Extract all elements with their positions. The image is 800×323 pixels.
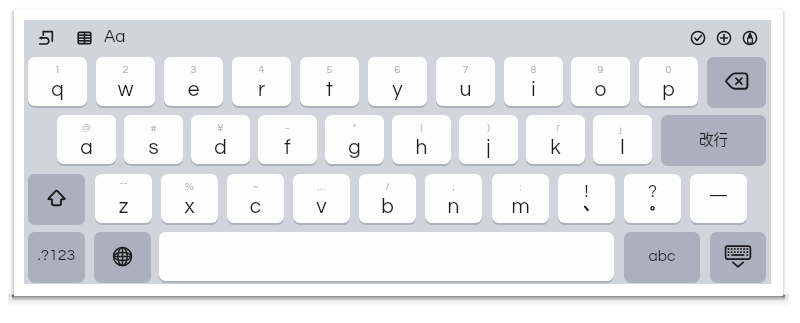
- staticText: ˆˆ: [95, 181, 152, 223]
- staticText: 1: [28, 64, 87, 106]
- button[interactable]: abc: [624, 232, 700, 281]
- staticText: Aa: [104, 28, 126, 46]
- staticText: ~: [227, 181, 284, 223]
- button[interactable]: ¥: [191, 115, 250, 164]
- button[interactable]: ): [459, 115, 518, 164]
- button[interactable]: #: [124, 115, 183, 164]
- staticText: o: [571, 79, 630, 106]
- staticText: ?: [624, 183, 681, 223]
- staticText: 0: [639, 64, 698, 106]
- button[interactable]: Aa: [104, 28, 128, 48]
- staticText: c: [227, 196, 284, 223]
- staticText: i: [504, 79, 563, 106]
- staticText: f: [258, 137, 317, 164]
- staticText: t: [300, 79, 359, 106]
- staticText: h: [392, 137, 451, 164]
- button[interactable]: ~: [227, 174, 284, 223]
- staticText: /: [359, 181, 416, 223]
- button[interactable]: 0: [639, 57, 698, 106]
- button[interactable]: *: [325, 115, 384, 164]
- button[interactable]: 2: [96, 57, 155, 106]
- button[interactable]: 3: [164, 57, 223, 106]
- staticText: abc: [624, 248, 700, 281]
- staticText: r: [232, 79, 291, 106]
- button[interactable]: 6: [368, 57, 427, 106]
- staticText: p: [639, 79, 698, 106]
- staticText: @: [57, 122, 116, 164]
- staticText: 」: [593, 123, 652, 164]
- button[interactable]: 9: [571, 57, 630, 106]
- button[interactable]: !: [558, 174, 615, 223]
- staticText: d: [191, 137, 250, 164]
- staticText: 4: [232, 64, 291, 106]
- staticText: k: [526, 137, 585, 164]
- staticText: 7: [436, 64, 495, 106]
- button[interactable]: ?: [624, 174, 681, 223]
- staticText: (: [392, 122, 451, 164]
- staticText: e: [164, 79, 223, 106]
- staticText: :: [492, 181, 549, 223]
- button[interactable]: —: [690, 174, 747, 223]
- button[interactable]: 」: [593, 115, 652, 164]
- staticText: u: [436, 79, 495, 106]
- staticText: -: [258, 122, 317, 164]
- button[interactable]: -: [258, 115, 317, 164]
- button[interactable]: 7: [436, 57, 495, 106]
- staticText: w: [96, 79, 155, 106]
- staticText: z: [95, 196, 152, 223]
- staticText: a: [57, 137, 116, 164]
- staticText: *: [325, 122, 384, 164]
- button[interactable]: 4: [232, 57, 291, 106]
- staticText: 8: [504, 64, 563, 106]
- button[interactable]: ;: [425, 174, 482, 223]
- button[interactable]: Convert: [38, 30, 54, 46]
- button[interactable]: Table: [77, 31, 92, 45]
- button[interactable]: @: [57, 115, 116, 164]
- button[interactable]: Change keyboard: [94, 232, 151, 281]
- button[interactable]: .?123: [28, 232, 85, 281]
- staticText: 6: [368, 64, 427, 106]
- staticText: m: [492, 196, 549, 223]
- button[interactable]: 1: [28, 57, 87, 106]
- button[interactable]: Backspace: [707, 57, 766, 106]
- staticText: 3: [164, 64, 223, 106]
- staticText: #: [124, 122, 183, 164]
- staticText: y: [368, 79, 427, 106]
- staticText: ¥: [191, 122, 250, 164]
- button[interactable]: …: [293, 174, 350, 223]
- staticText: 改行: [661, 128, 766, 164]
- button[interactable]: :: [492, 174, 549, 223]
- button[interactable]: /: [359, 174, 416, 223]
- button[interactable]: 改行: [661, 115, 766, 164]
- staticText: 2: [96, 64, 155, 106]
- button[interactable]: Shift: [28, 174, 85, 223]
- staticText: v: [293, 196, 350, 223]
- button[interactable]: 5: [300, 57, 359, 106]
- staticText: 5: [300, 64, 359, 106]
- staticText: x: [161, 196, 218, 223]
- staticText: g: [325, 137, 384, 164]
- button[interactable]: Pen: [742, 30, 758, 46]
- staticText: j: [459, 137, 518, 164]
- button[interactable]: Confirm: [690, 30, 706, 46]
- staticText: n: [425, 196, 482, 223]
- staticText: …: [293, 181, 350, 223]
- staticText: ;: [425, 181, 482, 223]
- button[interactable]: Add: [716, 30, 732, 46]
- button[interactable]: 「: [526, 115, 585, 164]
- button[interactable]: %: [161, 174, 218, 223]
- staticText: .?123: [28, 247, 85, 281]
- staticText: 9: [571, 64, 630, 106]
- button[interactable]: 8: [504, 57, 563, 106]
- staticText: 「: [526, 123, 585, 164]
- staticText: s: [124, 137, 183, 164]
- staticText: !: [558, 183, 615, 223]
- staticText: q: [28, 79, 87, 106]
- staticText: l: [593, 137, 652, 164]
- button[interactable]: Hide keyboard: [710, 232, 766, 281]
- button[interactable]: (: [392, 115, 451, 164]
- staticText: b: [359, 196, 416, 223]
- staticText: ): [459, 122, 518, 164]
- button[interactable]: ˆˆ: [95, 174, 152, 223]
